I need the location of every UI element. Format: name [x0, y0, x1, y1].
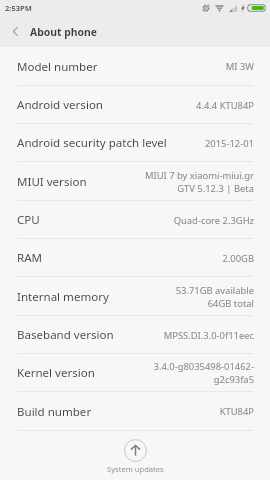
staticText: CPU — [17, 212, 40, 228]
staticText: 3.4.0-g8035498-01462- — [153, 360, 254, 373]
button[interactable]: CPU — [0, 201, 270, 239]
staticText: Quad-core 2.3GHz — [173, 214, 254, 227]
button[interactable]: Model number — [0, 47, 270, 86]
button[interactable]: Kernel version — [0, 354, 270, 392]
staticText: Kernel version — [17, 365, 95, 381]
staticText: RAM — [17, 250, 43, 266]
staticText: MI 3W — [225, 60, 254, 73]
button[interactable]: Back — [0, 16, 30, 47]
staticText: 2:53PM — [5, 3, 32, 13]
staticText: GTV 5.12.3 | Beta — [177, 182, 254, 195]
staticText: KTU84P — [219, 405, 254, 418]
staticText: MPSS.DI.3.0-0f11eec — [163, 329, 254, 342]
staticText: 2015-12-01 — [204, 137, 254, 150]
staticText: 53.71GB available — [175, 284, 254, 297]
staticText: Android security patch level — [17, 135, 167, 151]
staticText: 2.00GB — [222, 252, 254, 265]
staticText: Model number — [17, 59, 98, 75]
staticText: 4.4.4 KTU84P — [196, 99, 254, 112]
staticText: Build number — [17, 404, 92, 420]
button[interactable]: System updates — [0, 431, 270, 480]
staticText: 64GB total — [207, 297, 254, 310]
button[interactable]: MIUI version — [0, 162, 270, 201]
staticText: Internal memory — [17, 289, 109, 305]
button[interactable]: Internal memory — [0, 277, 270, 316]
button[interactable]: Android version — [0, 86, 270, 124]
staticText: g2c93fa5 — [213, 373, 254, 386]
button[interactable]: Android security patch level — [0, 124, 270, 162]
staticText: Android version — [17, 97, 104, 113]
staticText: Baseband version — [17, 327, 114, 343]
button[interactable]: RAM — [0, 239, 270, 277]
button[interactable]: Build number — [0, 392, 270, 431]
staticText: System updates — [107, 464, 164, 474]
staticText: About phone — [30, 25, 97, 39]
button[interactable]: Baseband version — [0, 316, 270, 354]
staticText: MIUI version — [17, 174, 87, 190]
staticText: MIUI 7 by xiaomi-miui.gr — [145, 169, 254, 182]
